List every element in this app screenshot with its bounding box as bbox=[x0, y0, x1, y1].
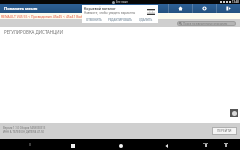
staticText: Версия 1.1.0 Сборка 5458030313 bbox=[3, 126, 46, 130]
button[interactable]: УДАЛИТЬ bbox=[139, 18, 153, 22]
button[interactable]: Recent apps bbox=[69, 142, 77, 150]
button[interactable]: Settings bbox=[192, 4, 216, 13]
button[interactable]: Back bbox=[163, 142, 171, 150]
staticText: RENAULT V45 55 < Проводинил 45х45 < 45х4… bbox=[1, 14, 88, 19]
staticText: ИНН & ТЕЛЕФОН ДИЛЕРА 47-50 bbox=[3, 130, 44, 134]
button[interactable]: Поиск по введенному описанию bbox=[178, 22, 235, 25]
staticText: Корневой каталог bbox=[84, 6, 116, 11]
button[interactable]: Home bbox=[168, 4, 192, 13]
staticText: Поиск по введенному описанию bbox=[183, 22, 228, 25]
staticText: Показать меню bbox=[4, 6, 38, 12]
button[interactable]: Exit bbox=[216, 4, 240, 13]
staticText: 13:48 bbox=[232, 0, 239, 4]
button[interactable]: ОТМЕНИТЬ bbox=[86, 18, 102, 22]
staticText: ПЕРЕЙТИ bbox=[217, 129, 232, 133]
button[interactable]: Home bbox=[117, 142, 125, 150]
staticText: Нажмите, чтобы увидеть варианты bbox=[84, 11, 136, 15]
staticText: Ене ножн bbox=[116, 0, 128, 4]
button[interactable]: ПЕРЕЙТИ bbox=[213, 128, 236, 134]
staticText: РЕГУЛИРОВКА ДИСТАНЦИИ bbox=[4, 29, 63, 35]
button[interactable]: РЕДАКТИРОВАТЬ bbox=[108, 18, 133, 22]
